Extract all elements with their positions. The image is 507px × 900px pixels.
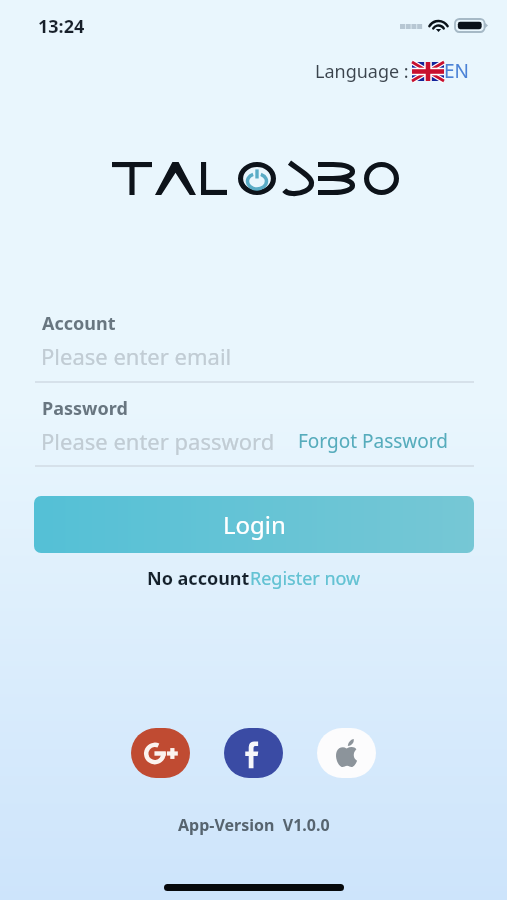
staticText: Please enter email (41, 341, 232, 371)
staticText: Password (42, 396, 128, 421)
staticText: Please enter password (41, 426, 275, 456)
button[interactable]: Sign in with Google (131, 728, 190, 778)
staticText: EN (444, 58, 470, 84)
staticText: Register now (250, 566, 361, 591)
button[interactable]: Language : (313, 55, 472, 87)
button[interactable]: Login (34, 496, 474, 553)
staticText: Forgot Password (298, 428, 448, 454)
button[interactable]: Register now (250, 566, 361, 591)
staticText: 13:24 (38, 14, 85, 39)
staticText: Login (223, 508, 286, 541)
staticText: Language : (315, 59, 409, 84)
staticText: No account (147, 566, 250, 591)
staticText: Account (42, 311, 116, 336)
button[interactable]: Sign in with Apple (317, 728, 376, 778)
staticText: App-Version V1.0.0 (178, 814, 330, 836)
button[interactable]: Forgot Password (294, 425, 452, 457)
button[interactable]: Sign in with Facebook (224, 728, 283, 778)
